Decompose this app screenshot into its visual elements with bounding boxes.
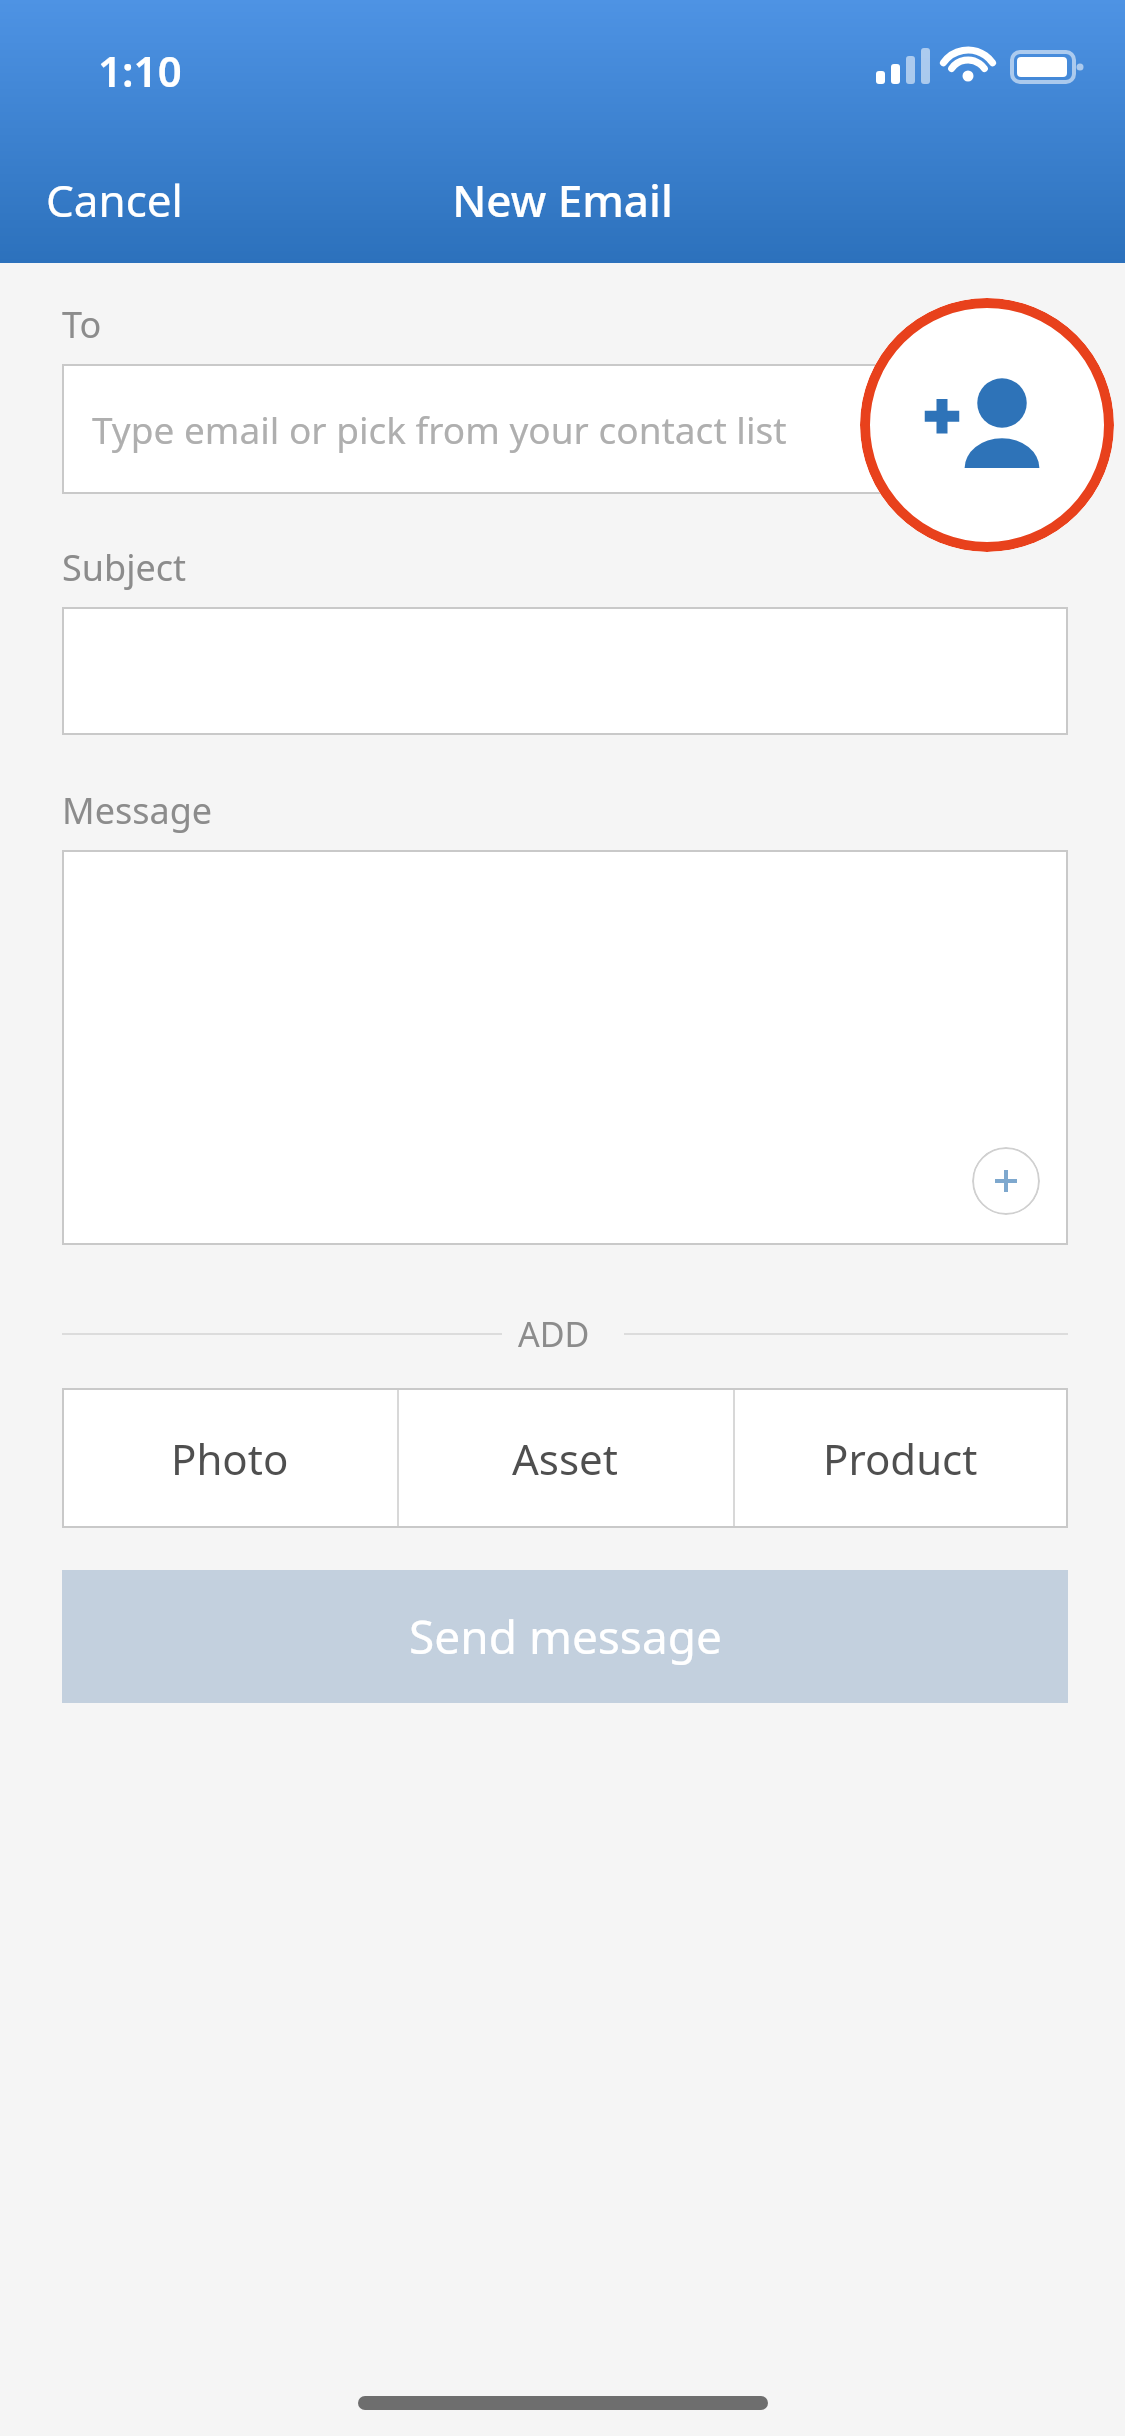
staticText: Subject <box>62 543 187 592</box>
staticText: New Email <box>0 170 1125 230</box>
staticText: Product <box>823 1430 978 1487</box>
staticText: Send message <box>409 1605 722 1668</box>
staticText: Asset <box>512 1430 618 1487</box>
staticText: To <box>62 300 102 349</box>
button[interactable]: Asset <box>397 1388 732 1528</box>
button[interactable]: Cancel <box>22 158 207 242</box>
button[interactable]: Add attachment <box>972 1147 1040 1215</box>
button[interactable]: Photo <box>62 1388 397 1528</box>
staticText: Photo <box>171 1430 289 1487</box>
button[interactable]: Send message <box>62 1570 1068 1703</box>
button[interactable] <box>62 607 1068 735</box>
staticText: Message <box>62 786 213 835</box>
button[interactable]: Type email or pick from your contact lis… <box>62 364 1068 494</box>
button[interactable] <box>62 850 1068 1245</box>
button[interactable]: Pick contact <box>860 298 1114 552</box>
staticText: ADD <box>518 1311 590 1357</box>
staticText: Cancel <box>46 170 183 230</box>
staticText: 1:10 <box>98 42 182 99</box>
button[interactable]: Product <box>733 1388 1068 1528</box>
staticText: Type email or pick from your contact lis… <box>92 404 787 454</box>
